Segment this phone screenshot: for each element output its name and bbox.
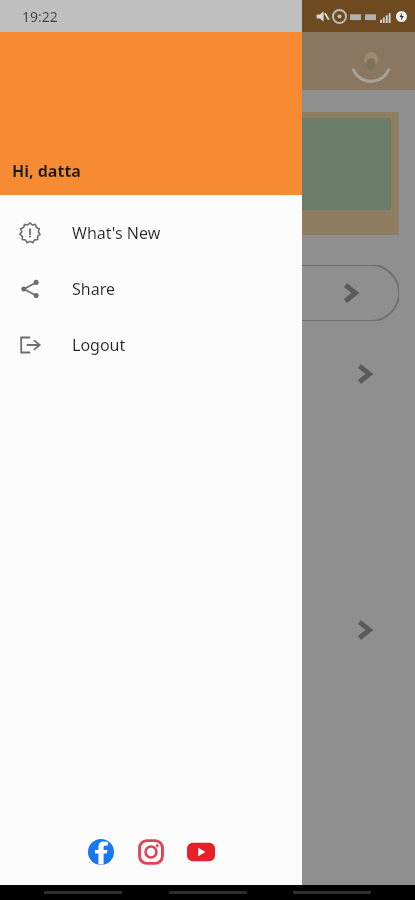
button[interactable]: Share (0, 261, 302, 317)
staticText: Share (72, 278, 115, 300)
button[interactable]: Instagram (131, 832, 171, 872)
staticText: 19:22 (22, 7, 58, 26)
button[interactable]: What's New (0, 205, 302, 261)
staticText: Hi, datta (12, 160, 81, 182)
button[interactable]: Facebook (81, 832, 121, 872)
staticText: What's New (72, 222, 161, 244)
staticText: Datta Digambara (28, 215, 123, 230)
button[interactable]: Logout (0, 317, 302, 373)
staticText: Logout (72, 334, 126, 356)
button[interactable]: YouTube (181, 832, 221, 872)
